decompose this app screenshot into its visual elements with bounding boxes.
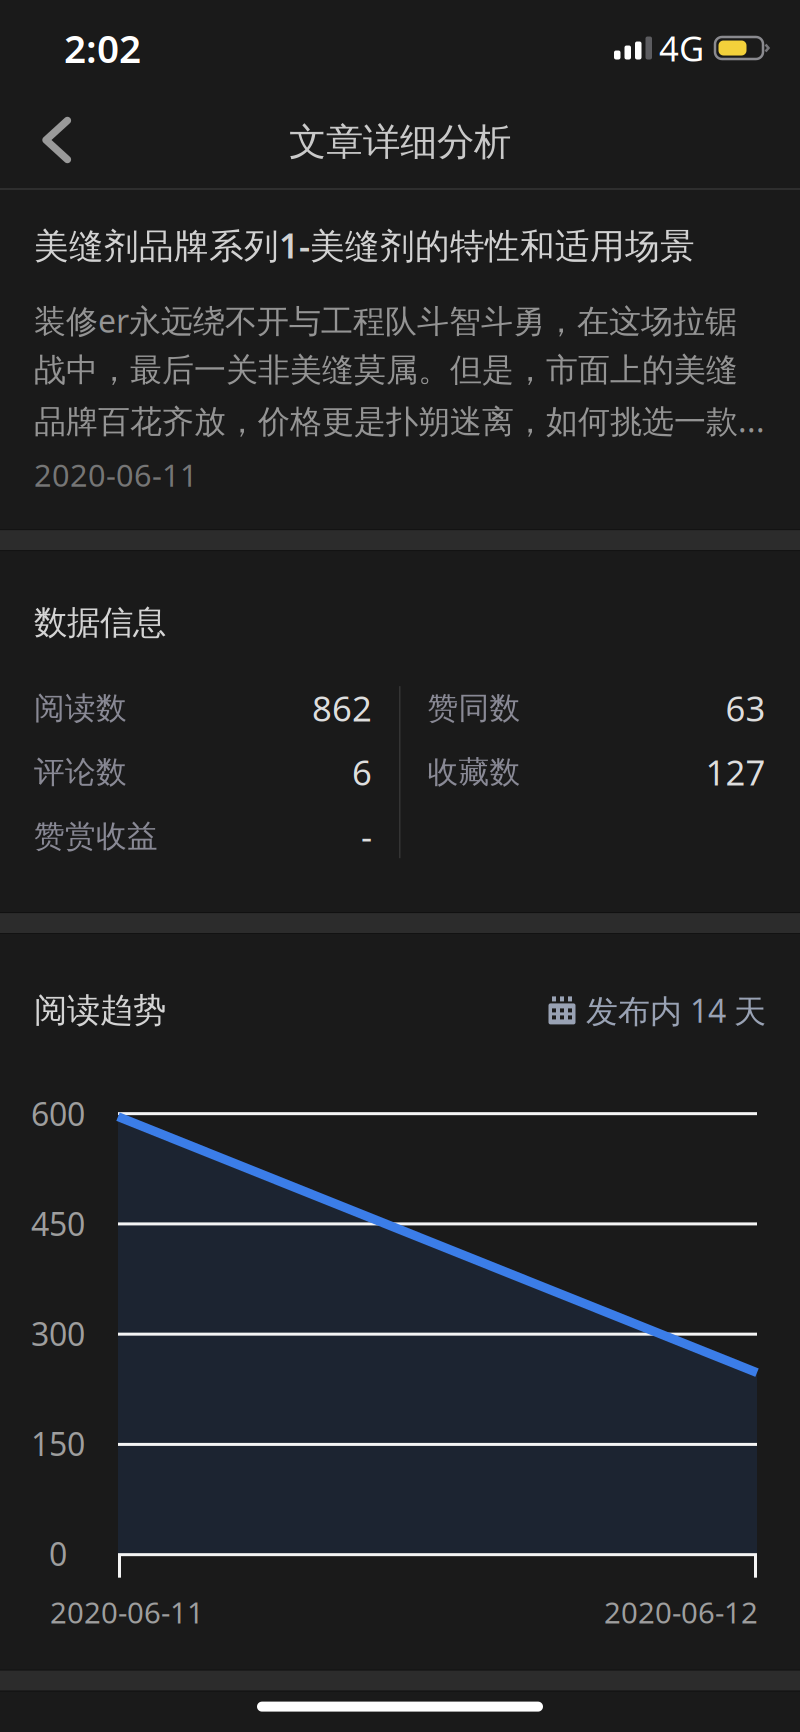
staticText: - [361, 813, 372, 859]
staticText: 4G [659, 25, 704, 71]
staticText: 阅读趋势 [34, 990, 166, 1031]
staticText: 600 [31, 1092, 85, 1135]
staticText: 装修er永远绕不开与工程队斗智斗勇，在这场拉锯战中，最后一关非美缝莫属。但是，市… [34, 299, 766, 441]
staticText: 450 [31, 1202, 85, 1245]
staticText: 评论数 [34, 753, 127, 791]
staticText: 2:02 [64, 22, 141, 74]
staticText: 数据信息 [34, 602, 166, 643]
staticText: 2020-06-11 [34, 454, 198, 495]
staticText: 2020-06-12 [604, 1593, 758, 1632]
staticText: 300 [31, 1312, 85, 1355]
staticText: 阅读数 [34, 689, 127, 727]
staticText: 0 [49, 1532, 67, 1575]
staticText: 文章详细分析 [289, 119, 511, 165]
staticText: 63 [725, 685, 765, 731]
staticText: 150 [31, 1422, 85, 1465]
staticText: 127 [705, 749, 765, 795]
staticText: 2020-06-11 [50, 1593, 204, 1632]
staticText: 862 [312, 685, 372, 731]
staticText: 收藏数 [427, 753, 520, 791]
staticText: 发布内 14 天 [586, 989, 766, 1032]
staticText: 美缝剂品牌系列1-美缝剂的特性和适用场景 [34, 222, 695, 268]
button[interactable]: Back [0, 96, 118, 188]
staticText: 赞赏收益 [34, 817, 158, 855]
staticText: 6 [352, 749, 372, 795]
button[interactable]: 发布内 14 天 [548, 989, 766, 1032]
staticText: 赞同数 [427, 689, 520, 727]
